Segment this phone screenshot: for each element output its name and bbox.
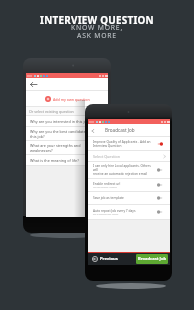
button[interactable]: What is the meaning of life? xyxy=(26,155,108,165)
staticText: Add my own question xyxy=(53,97,90,102)
staticText: What is the meaning of life? xyxy=(30,158,92,163)
staticText: Broadcast Job xyxy=(138,256,167,262)
button[interactable]: What are your strengths and weaknesses? xyxy=(26,141,108,154)
button[interactable]: Why are you interested in this job? xyxy=(26,116,108,126)
staticText: Save job as template xyxy=(93,196,124,200)
button[interactable]: Back xyxy=(88,126,97,135)
button[interactable]: Back xyxy=(26,78,108,90)
staticText: Why are you the best candidate for this … xyxy=(30,129,92,139)
staticText: KNOW MORE, xyxy=(71,23,124,32)
staticText: Enable redirect url xyxy=(93,182,121,186)
button[interactable]: Improve Quality of Applicants - Add an I… xyxy=(88,137,170,150)
button[interactable]: Save job as template xyxy=(88,192,170,204)
staticText: Or select existing question xyxy=(29,109,74,114)
button[interactable]: I can only hire Local applicants. Others… xyxy=(88,162,170,178)
staticText: Why are you interested in this job? xyxy=(30,119,92,124)
button[interactable]: Why are you the best candidate for this … xyxy=(26,127,108,140)
button[interactable]: Add my own question xyxy=(26,91,108,106)
staticText: you will receive 7 weekly xyxy=(93,186,117,189)
button[interactable]: Previous xyxy=(88,253,170,265)
staticText: Auto repost Job every 7 days xyxy=(93,209,136,213)
staticText: INTERVIEW QUESTION xyxy=(40,13,154,26)
staticText: Improve Quality of Applicants - Add an I… xyxy=(93,140,151,148)
staticText: Select Question xyxy=(93,154,120,159)
staticText: job is reposted per repost xyxy=(93,213,119,216)
button[interactable]: Enable redirect url xyxy=(88,179,170,191)
button[interactable]: Auto repost Job every 7 days xyxy=(88,205,170,219)
button[interactable]: Broadcast Job xyxy=(136,254,168,264)
staticText: Broadcast Job xyxy=(105,127,135,133)
button[interactable]: Select Question xyxy=(88,151,170,161)
staticText: I can only hire Local applicants. Others… xyxy=(93,164,156,176)
staticText: Previous xyxy=(100,256,118,262)
staticText: ASK MORE xyxy=(77,31,117,40)
staticText: What are your strengths and weaknesses? xyxy=(30,143,92,153)
